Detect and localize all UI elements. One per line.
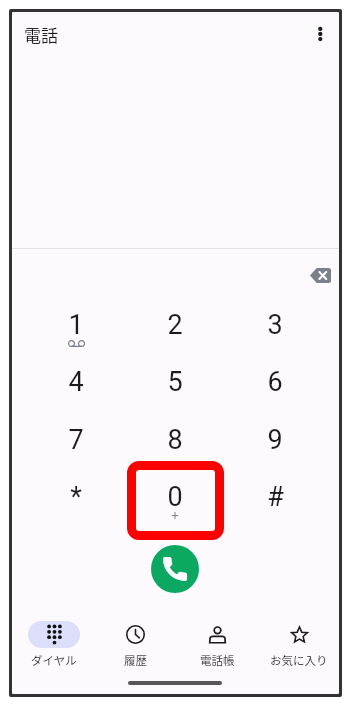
button[interactable] xyxy=(30,469,122,525)
button[interactable] xyxy=(30,412,122,468)
button[interactable] xyxy=(229,354,321,410)
button[interactable]: 電話帳 xyxy=(176,612,258,670)
staticText: 0 xyxy=(167,481,183,513)
staticText: 4 xyxy=(68,366,84,398)
button[interactable] xyxy=(30,297,122,353)
staticText: 8 xyxy=(167,424,183,456)
staticText: 3 xyxy=(267,309,283,341)
staticText: 履歴 xyxy=(124,652,147,669)
staticText: 1 xyxy=(68,309,84,341)
staticText: # xyxy=(267,481,284,513)
button[interactable]: 履歴 xyxy=(94,612,176,670)
button[interactable] xyxy=(229,297,321,353)
button[interactable] xyxy=(129,469,221,525)
button[interactable] xyxy=(129,354,221,410)
staticText: 9 xyxy=(267,424,283,456)
button[interactable]: More options xyxy=(303,12,336,56)
button[interactable]: Backspace xyxy=(306,261,335,290)
staticText: 6 xyxy=(267,366,283,398)
staticText: 2 xyxy=(167,309,183,341)
button[interactable] xyxy=(129,412,221,468)
button[interactable] xyxy=(129,297,221,353)
button[interactable]: お気に入り xyxy=(258,612,339,670)
button[interactable]: Call xyxy=(151,545,199,593)
staticText: お気に入り xyxy=(270,652,328,669)
staticText: 電話 xyxy=(24,22,58,47)
button[interactable] xyxy=(30,354,122,410)
button[interactable] xyxy=(229,469,321,525)
button[interactable] xyxy=(229,412,321,468)
button[interactable]: 電話 xyxy=(24,12,144,57)
button[interactable]: ダイヤル xyxy=(13,612,95,670)
staticText: * xyxy=(70,481,82,513)
staticText: + xyxy=(171,506,180,522)
staticText: 5 xyxy=(167,366,183,398)
staticText: ダイヤル xyxy=(31,652,77,669)
staticText: 電話帳 xyxy=(200,652,235,669)
staticText: 7 xyxy=(68,424,84,456)
